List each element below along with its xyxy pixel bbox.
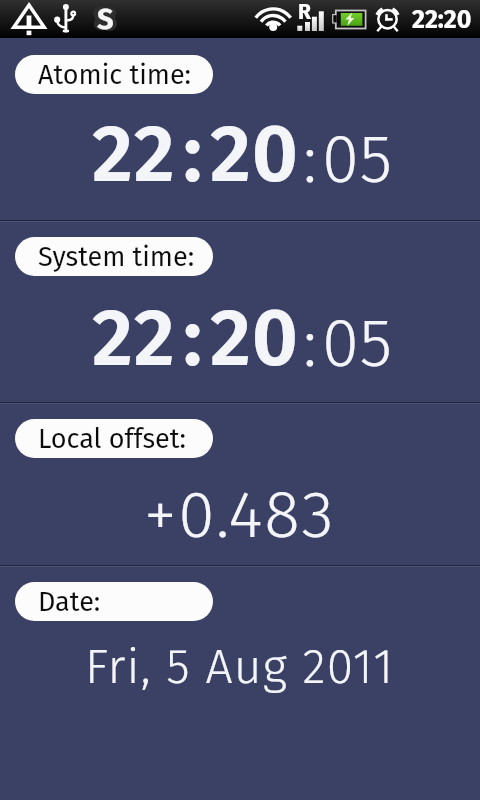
other: Warning	[12, 2, 46, 36]
other: Skype	[90, 3, 120, 33]
staticText: 22	[92, 106, 176, 202]
staticText: System time:	[38, 241, 195, 273]
staticText: Date:	[38, 586, 101, 618]
staticText: :	[183, 106, 203, 202]
staticText: Atomic time:	[38, 59, 192, 91]
staticText: Local offset:	[38, 423, 187, 455]
other: USB connected	[53, 3, 77, 33]
staticText: 05	[322, 119, 393, 199]
staticText: S	[97, 2, 114, 32]
staticText: :	[303, 303, 318, 383]
other: Battery charging	[331, 8, 368, 31]
staticText: 05	[322, 303, 393, 383]
staticText: :	[183, 290, 203, 386]
staticText: :	[303, 119, 318, 199]
other: Alarm set	[375, 4, 401, 33]
button[interactable]: System time:	[15, 237, 213, 276]
staticText: +0.483	[144, 475, 336, 554]
other: Wi-Fi	[256, 4, 290, 33]
staticText: 22:20	[412, 5, 472, 35]
staticText: R	[298, 0, 311, 24]
staticText: Fri, 5 Aug 2011	[85, 638, 395, 696]
button[interactable]: Local offset:	[15, 419, 213, 458]
button[interactable]: Date:	[15, 582, 213, 621]
staticText: 20	[210, 290, 299, 386]
staticText: 22	[92, 290, 176, 386]
other: Mobile signal, roaming	[296, 2, 326, 32]
staticText: 20	[210, 106, 299, 202]
button[interactable]: Atomic time:	[15, 55, 213, 94]
